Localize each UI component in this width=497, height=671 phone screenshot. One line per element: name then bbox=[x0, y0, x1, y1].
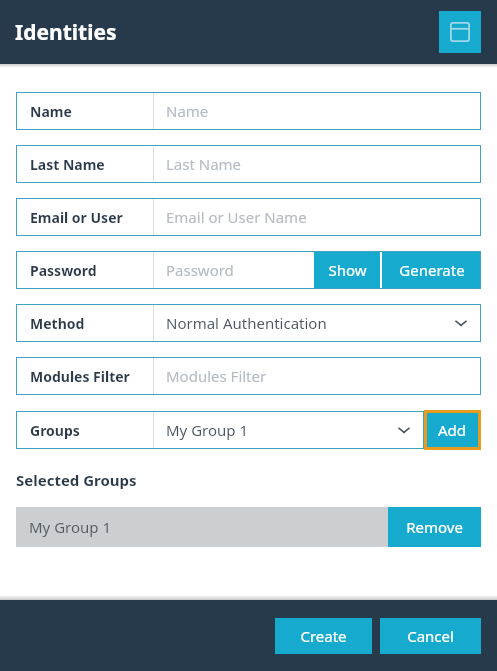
button[interactable]: Generate bbox=[382, 251, 481, 289]
staticText: Email or User bbox=[30, 208, 123, 227]
button[interactable]: Email or User bbox=[16, 198, 153, 236]
staticText: Selected Groups bbox=[16, 470, 137, 490]
staticText: Modules Filter bbox=[166, 366, 267, 386]
staticText: Remove bbox=[406, 517, 463, 537]
button[interactable]: Remove bbox=[388, 507, 481, 547]
staticText: Last Name bbox=[30, 155, 105, 174]
button[interactable]: Last Name bbox=[16, 145, 153, 183]
button[interactable]: Modules Filter bbox=[154, 357, 481, 395]
staticText: Email or User Name bbox=[166, 207, 307, 227]
staticText: Modules Filter bbox=[30, 367, 130, 386]
staticText: Method bbox=[30, 314, 85, 333]
button[interactable]: Add bbox=[427, 413, 478, 447]
button[interactable]: Name bbox=[16, 92, 153, 130]
button[interactable]: Last Name bbox=[154, 145, 481, 183]
staticText: Groups bbox=[30, 421, 80, 440]
button[interactable]: Create bbox=[275, 618, 372, 654]
staticText: Generate bbox=[399, 260, 465, 280]
button[interactable]: Password bbox=[154, 251, 314, 289]
button[interactable]: Name bbox=[154, 92, 481, 130]
button[interactable]: Password bbox=[16, 251, 153, 289]
staticText: Add bbox=[438, 420, 467, 440]
staticText: Normal Authentication bbox=[166, 313, 327, 333]
button[interactable]: My Group 1 bbox=[16, 507, 388, 547]
staticText: Last Name bbox=[166, 154, 242, 174]
staticText: Show bbox=[328, 260, 367, 280]
button[interactable]: Show bbox=[314, 251, 380, 289]
button[interactable]: Normal Authentication bbox=[154, 304, 481, 342]
staticText: Password bbox=[166, 260, 234, 280]
button[interactable]: Cancel bbox=[380, 618, 481, 654]
staticText: Create bbox=[300, 626, 347, 646]
button[interactable]: Open window bbox=[439, 11, 481, 53]
staticText: Name bbox=[166, 101, 209, 121]
button[interactable]: My Group 1 bbox=[154, 411, 424, 449]
staticText: Name bbox=[30, 102, 72, 121]
staticText: Password bbox=[30, 261, 97, 280]
button[interactable]: Email or User Name bbox=[154, 198, 481, 236]
button[interactable]: Method bbox=[16, 304, 153, 342]
staticText: Identities bbox=[15, 18, 117, 47]
button[interactable]: Modules Filter bbox=[16, 357, 153, 395]
button[interactable]: Groups bbox=[16, 411, 153, 449]
staticText: My Group 1 bbox=[29, 517, 112, 537]
staticText: Cancel bbox=[407, 626, 454, 646]
staticText: My Group 1 bbox=[166, 420, 249, 440]
